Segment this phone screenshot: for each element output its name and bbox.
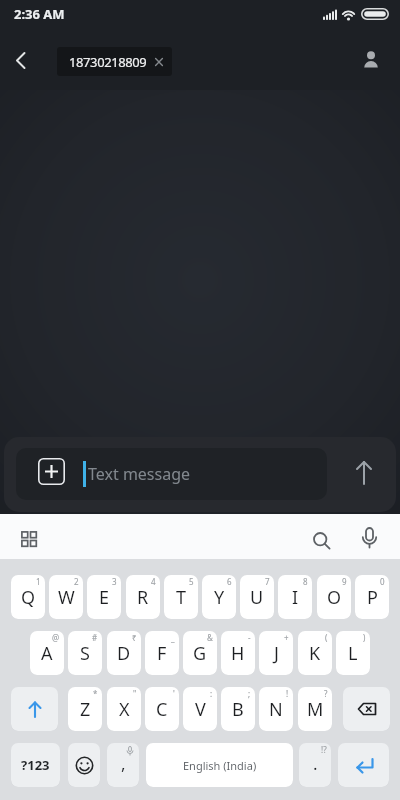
staticText: ;	[248, 688, 251, 699]
button[interactable]: L	[336, 631, 370, 675]
button[interactable]	[338, 743, 389, 787]
button[interactable]: Z	[68, 687, 102, 731]
button[interactable]: M	[298, 687, 332, 731]
staticText: Text message	[88, 463, 191, 485]
staticText: (	[325, 632, 328, 643]
staticText: ?	[324, 688, 328, 699]
button[interactable]: E	[87, 575, 121, 619]
staticText: I	[292, 585, 299, 610]
button[interactable]	[343, 687, 390, 731]
button[interactable]: ?123	[11, 743, 60, 787]
staticText: D	[117, 641, 131, 666]
button[interactable]	[358, 46, 386, 74]
staticText: P	[367, 585, 378, 610]
button[interactable]: English (India)	[146, 743, 293, 787]
staticText: @	[52, 632, 60, 643]
button[interactable]: R	[126, 575, 160, 619]
staticText: L	[348, 641, 358, 666]
button[interactable]	[11, 687, 58, 731]
staticText: Y	[214, 585, 225, 610]
staticText: .	[313, 752, 318, 775]
button[interactable]	[308, 528, 336, 554]
staticText: X	[119, 697, 130, 722]
button[interactable]	[342, 459, 386, 489]
staticText: A	[41, 641, 53, 666]
button[interactable]: I	[278, 575, 312, 619]
staticText: '	[173, 688, 175, 699]
staticText: 18730218809	[69, 53, 147, 71]
button[interactable]: N	[259, 687, 293, 731]
staticText: M	[307, 697, 324, 722]
staticText: ₹	[132, 632, 137, 643]
staticText: E	[99, 585, 110, 610]
staticText: ,	[121, 752, 126, 775]
button[interactable]: Q	[11, 575, 45, 619]
staticText: F	[157, 641, 167, 666]
button[interactable]: K	[298, 631, 332, 675]
staticText: +	[284, 632, 289, 643]
staticText: W	[58, 585, 75, 610]
staticText: S	[80, 641, 90, 666]
button[interactable]: U	[240, 575, 274, 619]
staticText: J	[274, 641, 279, 666]
staticText: !	[286, 688, 289, 699]
staticText: )	[363, 632, 366, 643]
button[interactable]: Y	[202, 575, 236, 619]
staticText: R	[137, 585, 149, 610]
button[interactable]: S	[68, 631, 102, 675]
staticText: #	[92, 632, 98, 643]
button[interactable]	[38, 458, 65, 485]
staticText: G	[193, 641, 207, 666]
staticText: 1	[36, 576, 41, 587]
staticText: 2:36 AM	[14, 5, 65, 23]
button[interactable]: X	[107, 687, 141, 731]
button[interactable]	[14, 527, 44, 551]
button[interactable]	[8, 48, 36, 74]
staticText: Z	[80, 697, 91, 722]
button[interactable]: V	[183, 687, 217, 731]
staticText: 6	[227, 576, 232, 587]
staticText: _	[171, 632, 175, 643]
staticText: V	[195, 697, 206, 722]
staticText: 7	[265, 576, 270, 587]
staticText: K	[309, 641, 321, 666]
button[interactable]: H	[221, 631, 255, 675]
staticText: English (India)	[183, 758, 257, 773]
staticText: U	[250, 585, 264, 610]
button[interactable]: P	[355, 575, 389, 619]
button[interactable]: ,	[107, 743, 139, 787]
button[interactable]	[68, 743, 100, 787]
staticText: 2	[74, 576, 79, 587]
button[interactable]: C	[145, 687, 179, 731]
staticText: ?123	[21, 756, 50, 774]
button[interactable]: .	[299, 743, 331, 787]
staticText: *	[93, 688, 98, 699]
staticText: !?	[321, 744, 327, 755]
button[interactable]: J	[259, 631, 293, 675]
staticText: :	[210, 688, 213, 699]
button[interactable]: 18730218809	[57, 47, 172, 76]
staticText: 5	[189, 576, 194, 587]
button[interactable]: Text message	[16, 448, 327, 500]
staticText: -	[248, 632, 251, 643]
staticText: "	[133, 688, 137, 699]
button[interactable]	[355, 525, 383, 553]
staticText: C	[156, 697, 168, 722]
button[interactable]: O	[317, 575, 351, 619]
button[interactable]: W	[49, 575, 83, 619]
staticText: 8	[303, 576, 308, 587]
button[interactable]: T	[164, 575, 198, 619]
staticText: T	[176, 585, 187, 610]
staticText: O	[327, 585, 342, 610]
button[interactable]: G	[183, 631, 217, 675]
staticText: N	[269, 697, 283, 722]
button[interactable]: A	[30, 631, 64, 675]
staticText: 4	[151, 576, 156, 587]
button[interactable]: F	[145, 631, 179, 675]
staticText: &	[207, 632, 213, 643]
staticText: 0	[380, 576, 385, 587]
staticText: 9	[342, 576, 347, 587]
button[interactable]: D	[107, 631, 141, 675]
button[interactable]: B	[221, 687, 255, 731]
staticText: Q	[21, 585, 36, 610]
